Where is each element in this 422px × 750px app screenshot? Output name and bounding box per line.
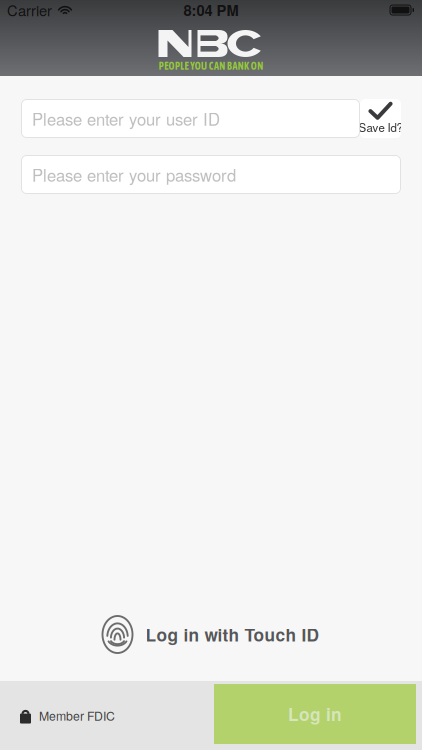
staticText: Log in with Touch ID <box>145 622 319 647</box>
staticText: PEOPLE YOU CAN BANK ON <box>159 60 263 72</box>
staticText: Please enter your user ID <box>32 107 220 130</box>
staticText: Member FDIC <box>39 707 115 724</box>
staticText: Log in <box>288 702 342 726</box>
staticText: Please enter your password <box>32 163 236 186</box>
button[interactable]: Log in with Touch ID <box>96 608 325 661</box>
button[interactable]: Save Id <box>360 99 401 138</box>
staticText: 8:04 PM <box>183 0 238 20</box>
staticText: Save Id? <box>358 119 402 135</box>
staticText: Carrier <box>7 0 52 20</box>
button[interactable]: Log in <box>214 684 416 744</box>
